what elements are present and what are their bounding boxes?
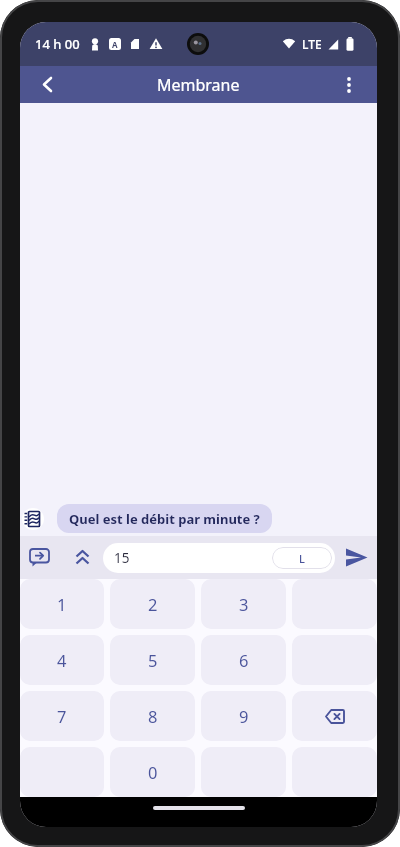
staticText: 3 bbox=[239, 593, 249, 615]
staticText: 2 bbox=[148, 593, 158, 615]
staticText: A bbox=[112, 39, 118, 50]
staticText: L bbox=[299, 551, 305, 566]
staticText: 7 bbox=[57, 705, 67, 727]
staticText: 5 bbox=[148, 649, 158, 671]
staticText: 14 h 00 bbox=[35, 35, 80, 53]
staticText: 15 bbox=[114, 549, 130, 567]
staticText: LTE bbox=[302, 36, 322, 52]
staticText: 4 bbox=[57, 649, 67, 671]
staticText: 0 bbox=[148, 761, 158, 783]
staticText: 6 bbox=[239, 649, 249, 671]
staticText: 9 bbox=[239, 705, 249, 727]
staticText: 1 bbox=[57, 593, 67, 615]
staticText: Membrane bbox=[157, 74, 240, 96]
staticText: 8 bbox=[148, 705, 158, 727]
staticText: Quel est le débit par minute ? bbox=[69, 510, 260, 528]
